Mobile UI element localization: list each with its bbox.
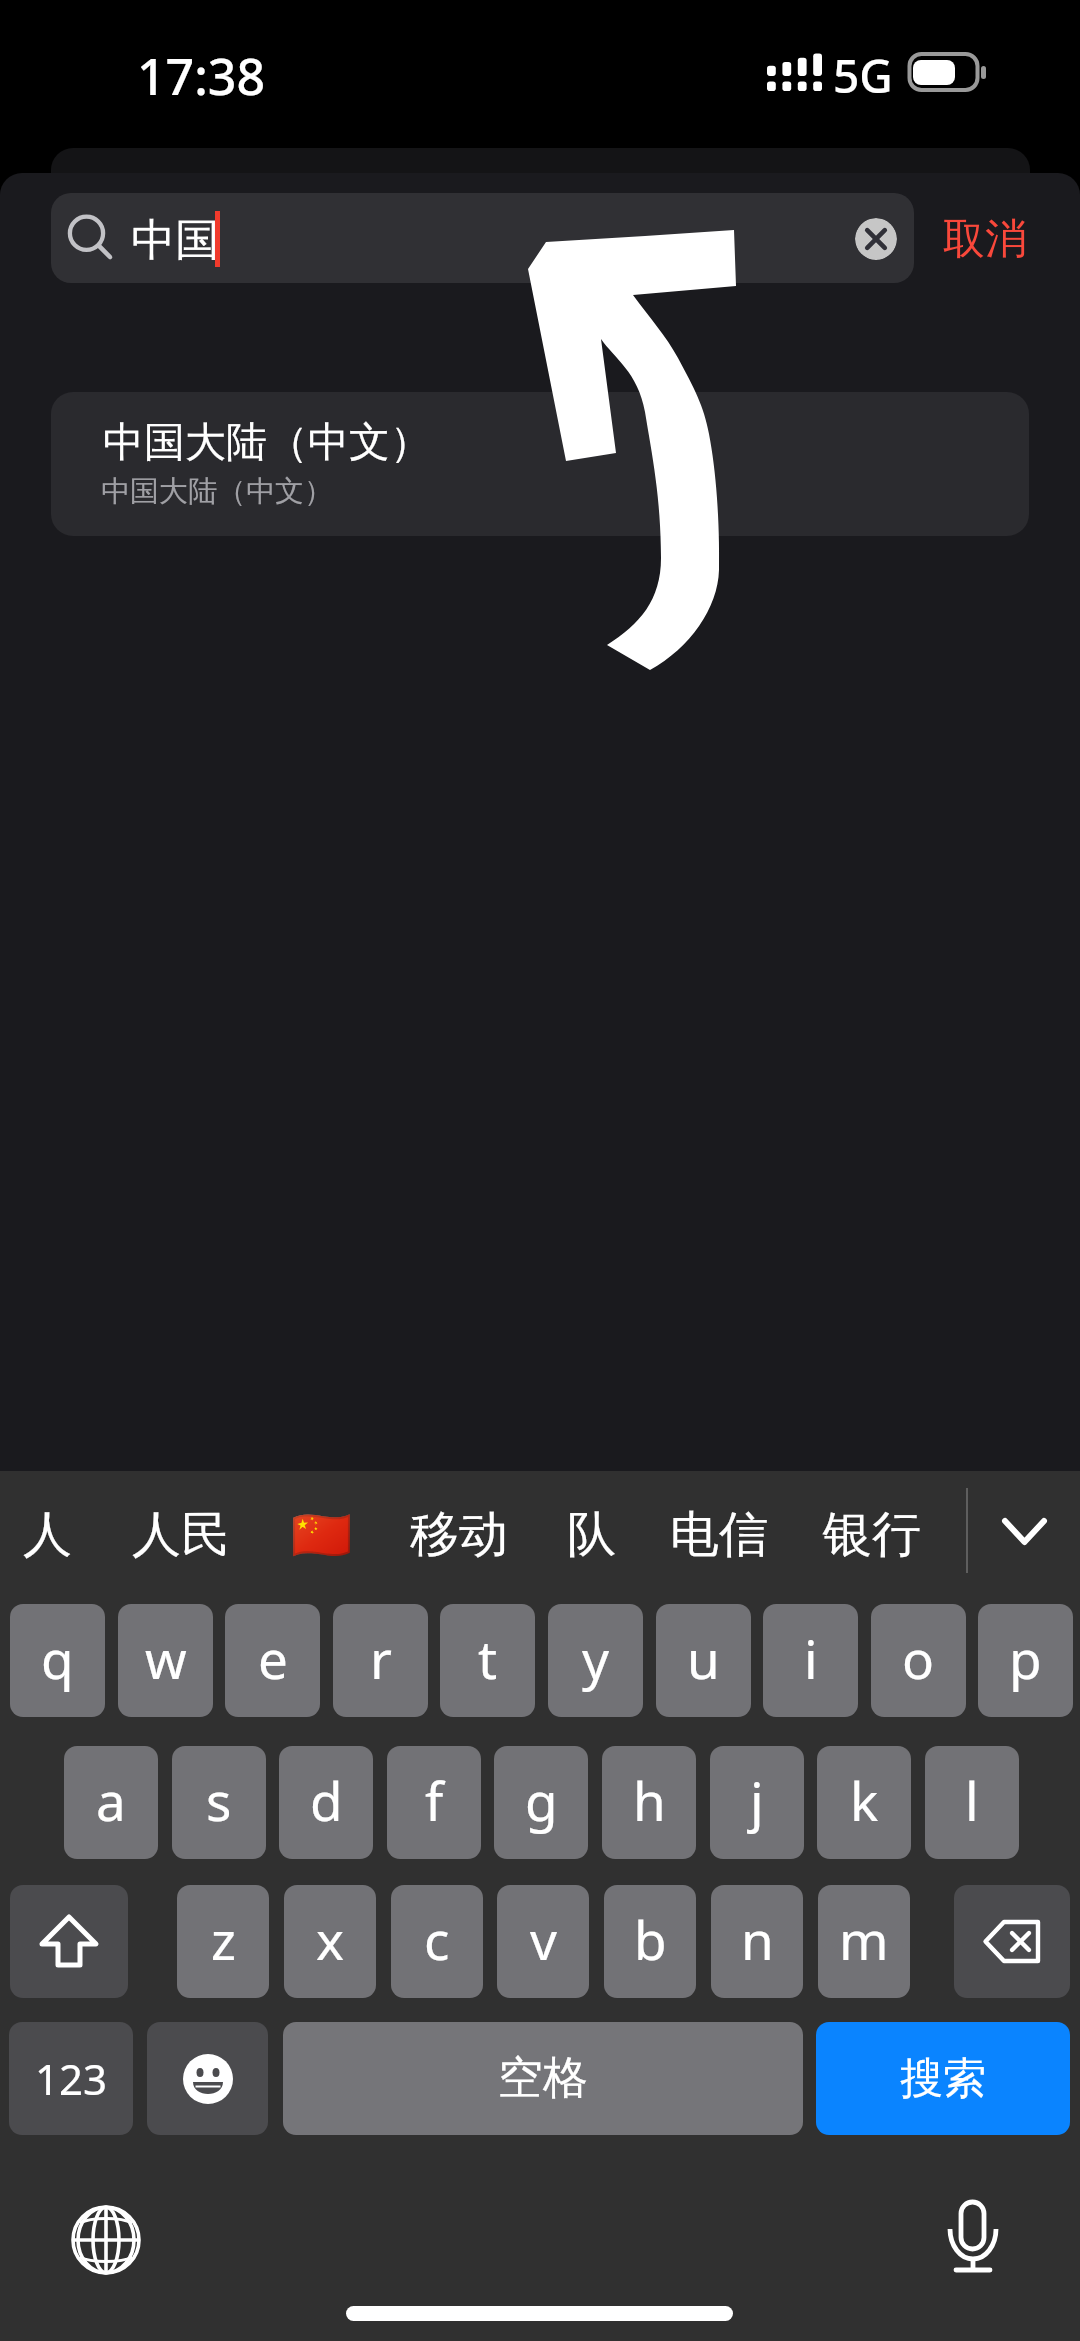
- button[interactable]: Collapse candidates: [978, 1485, 1070, 1577]
- button[interactable]: [51, 193, 914, 283]
- button[interactable]: z: [177, 1885, 269, 1998]
- button[interactable]: g: [494, 1746, 588, 1859]
- button[interactable]: Delete: [954, 1885, 1070, 1998]
- staticText: 搜索: [900, 2052, 986, 2106]
- staticText: 中国大陆（中文）: [101, 473, 333, 510]
- staticText: k: [850, 1764, 879, 1836]
- button[interactable]: y: [548, 1604, 643, 1717]
- staticText: j: [750, 1764, 764, 1836]
- button[interactable]: e: [225, 1604, 320, 1717]
- staticText: 队: [567, 1504, 616, 1566]
- button[interactable]: h: [602, 1746, 696, 1859]
- staticText: v: [530, 1903, 557, 1975]
- button[interactable]: c: [391, 1885, 483, 1998]
- staticText: 人: [23, 1504, 72, 1566]
- staticText: g: [525, 1764, 558, 1836]
- staticText: 中国: [131, 213, 219, 268]
- button[interactable]: m: [818, 1885, 910, 1998]
- button[interactable]: l: [925, 1746, 1019, 1859]
- button[interactable]: 电信: [648, 1487, 790, 1583]
- button[interactable]: 人: [1, 1487, 94, 1583]
- button[interactable]: u: [656, 1604, 751, 1717]
- staticText: y: [582, 1622, 610, 1694]
- button[interactable]: Change keyboard: [46, 2180, 166, 2300]
- staticText: q: [41, 1622, 74, 1694]
- button[interactable]: v: [497, 1885, 589, 1998]
- button[interactable]: Clear text: [855, 218, 897, 260]
- button[interactable]: 取消: [934, 203, 1036, 275]
- button[interactable]: Shift: [10, 1885, 128, 1998]
- button[interactable]: 搜索: [816, 2022, 1070, 2135]
- button[interactable]: 移动: [388, 1487, 530, 1583]
- staticText: n: [741, 1903, 774, 1975]
- button[interactable]: 队: [545, 1487, 638, 1583]
- staticText: l: [965, 1764, 979, 1836]
- staticText: r: [370, 1622, 392, 1694]
- staticText: 电信: [670, 1504, 768, 1566]
- button[interactable]: 123: [9, 2022, 133, 2135]
- button[interactable]: p: [978, 1604, 1073, 1717]
- button[interactable]: f: [387, 1746, 481, 1859]
- staticText: d: [310, 1764, 343, 1836]
- staticText: 银行: [823, 1504, 921, 1566]
- button[interactable]: 🇨🇳: [269, 1487, 375, 1583]
- button[interactable]: s: [172, 1746, 266, 1859]
- button[interactable]: Voice input: [917, 2190, 1029, 2290]
- staticText: 5G: [833, 44, 893, 107]
- button[interactable]: 银行: [801, 1487, 943, 1583]
- staticText: 人民: [132, 1504, 230, 1566]
- staticText: 中国大陆（中文）: [103, 417, 431, 469]
- staticText: 空格: [498, 2050, 588, 2107]
- staticText: u: [687, 1622, 720, 1694]
- staticText: h: [633, 1764, 666, 1836]
- button[interactable]: x: [284, 1885, 376, 1998]
- staticText: b: [634, 1903, 667, 1975]
- button[interactable]: k: [817, 1746, 911, 1859]
- staticText: a: [96, 1764, 126, 1836]
- button[interactable]: 人民: [110, 1487, 252, 1583]
- button[interactable]: a: [64, 1746, 158, 1859]
- button[interactable]: n: [711, 1885, 803, 1998]
- staticText: s: [206, 1764, 232, 1836]
- staticText: p: [1009, 1622, 1042, 1694]
- button[interactable]: r: [333, 1604, 428, 1717]
- button[interactable]: 中国大陆（中文）: [51, 392, 1029, 536]
- staticText: c: [424, 1903, 450, 1975]
- staticText: x: [316, 1903, 345, 1975]
- staticText: o: [902, 1622, 935, 1694]
- staticText: 17:38: [137, 42, 265, 110]
- staticText: 移动: [410, 1504, 508, 1566]
- staticText: z: [211, 1903, 236, 1975]
- staticText: i: [804, 1622, 818, 1694]
- button[interactable]: d: [279, 1746, 373, 1859]
- staticText: m: [839, 1903, 889, 1975]
- staticText: f: [425, 1764, 444, 1836]
- staticText: 🇨🇳: [291, 1507, 353, 1564]
- button[interactable]: i: [763, 1604, 858, 1717]
- button[interactable]: j: [710, 1746, 804, 1859]
- staticText: e: [258, 1622, 288, 1694]
- button[interactable]: b: [604, 1885, 696, 1998]
- button[interactable]: o: [871, 1604, 966, 1717]
- button[interactable]: t: [440, 1604, 535, 1717]
- button[interactable]: w: [118, 1604, 213, 1717]
- staticText: 123: [35, 2050, 108, 2107]
- button[interactable]: q: [10, 1604, 105, 1717]
- button[interactable]: 空格: [283, 2022, 803, 2135]
- staticText: 取消: [943, 213, 1027, 266]
- staticText: t: [478, 1622, 498, 1694]
- button[interactable]: Emoji keyboard: [147, 2022, 268, 2135]
- staticText: w: [145, 1622, 187, 1694]
